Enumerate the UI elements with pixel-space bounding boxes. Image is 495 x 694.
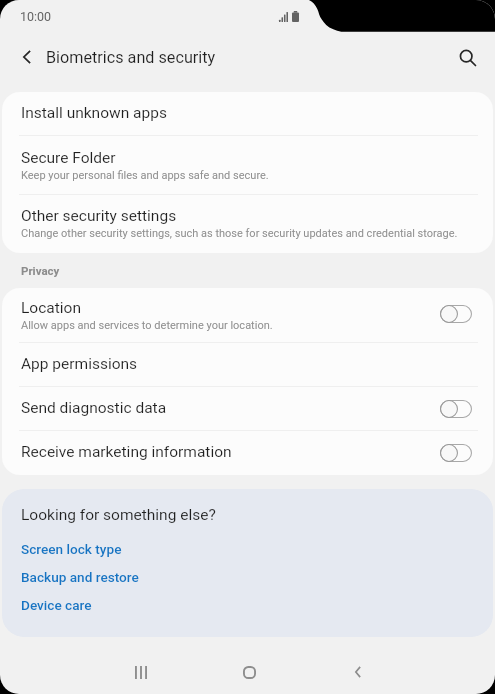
button[interactable]: App permissions — [2, 343, 493, 387]
staticText: Privacy — [21, 264, 60, 277]
button[interactable]: Backup and restore — [21, 561, 139, 587]
button[interactable]: Location — [2, 288, 493, 343]
button[interactable]: Other security settings — [2, 195, 493, 253]
button[interactable]: Receive marketing information — [2, 431, 493, 475]
button[interactable]: Secure Folder — [2, 136, 493, 195]
button[interactable]: Home — [222, 646, 277, 694]
button[interactable]: Search — [450, 39, 484, 73]
button[interactable]: Recent apps — [113, 646, 168, 694]
staticText: 10:00 — [20, 9, 52, 24]
button[interactable]: Toggle — [440, 400, 472, 418]
staticText: Allow apps and services to determine you… — [21, 317, 273, 332]
staticText: Keep your personal files and apps safe a… — [21, 167, 269, 182]
staticText: Biometrics and security — [46, 48, 216, 67]
staticText: Install unknown apps — [21, 104, 167, 122]
staticText: Screen lock type — [21, 533, 122, 559]
staticText: Looking for something else? — [21, 499, 216, 525]
button[interactable]: Install unknown apps — [2, 92, 493, 136]
button[interactable]: Toggle — [440, 444, 472, 462]
button[interactable]: Device care — [21, 589, 92, 615]
staticText: Other security settings — [21, 206, 177, 225]
staticText: Backup and restore — [21, 561, 139, 587]
button[interactable]: Navigate up — [9, 38, 44, 73]
staticText: Change other security settings, such as … — [21, 225, 458, 240]
staticText: Receive marketing information — [21, 443, 232, 461]
staticText: Secure Folder — [21, 148, 116, 167]
staticText: Send diagnostic data — [21, 399, 167, 417]
staticText: App permissions — [21, 355, 138, 373]
staticText: Location — [21, 298, 81, 317]
button[interactable]: Send diagnostic data — [2, 387, 493, 431]
button[interactable]: Back — [330, 646, 385, 694]
button[interactable]: Toggle — [440, 305, 472, 323]
staticText: Device care — [21, 589, 92, 615]
button[interactable]: Screen lock type — [21, 533, 122, 559]
